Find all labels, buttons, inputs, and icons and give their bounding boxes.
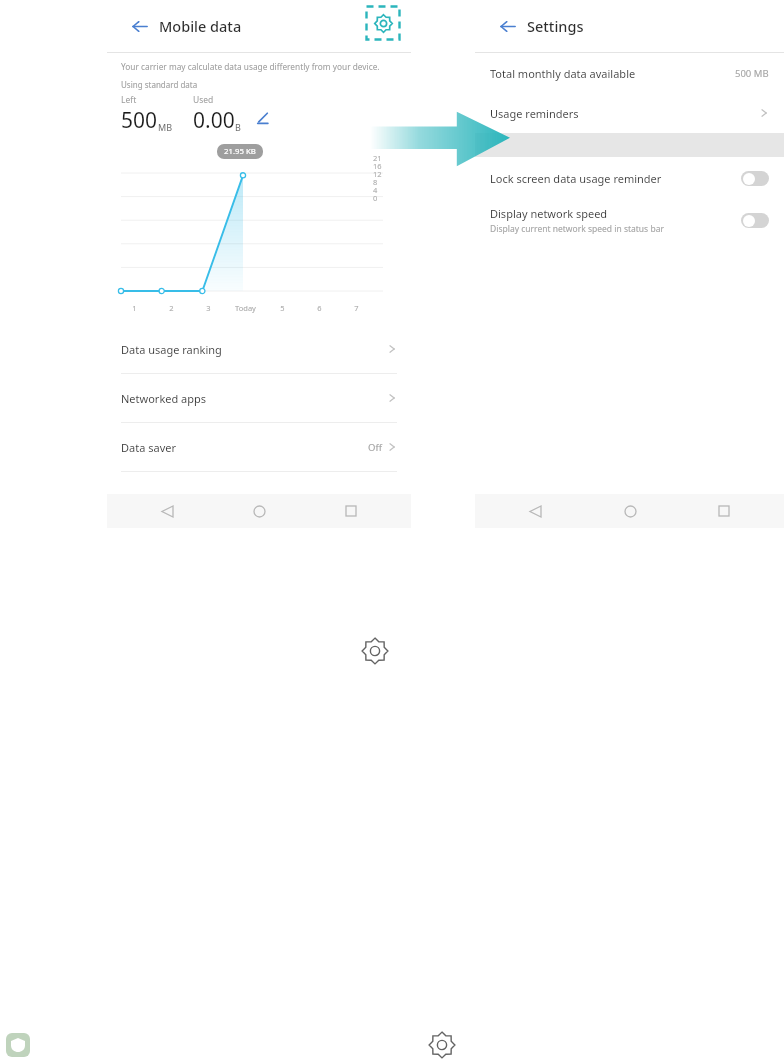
button[interactable]: Data usage ranking [107, 325, 411, 374]
staticText: Networked apps [121, 391, 207, 406]
staticText: Display network speed [490, 206, 608, 221]
staticText: 21.95 KB [224, 146, 256, 157]
button[interactable]: Recents [339, 499, 363, 523]
button[interactable]: Back [523, 499, 547, 523]
staticText: Left [121, 94, 137, 106]
staticText: 6 [301, 303, 338, 313]
staticText: MB [158, 121, 173, 133]
staticText: B [235, 121, 241, 133]
staticText: Lock screen data usage reminder [490, 171, 662, 186]
staticText: Mobile data [159, 16, 242, 36]
staticText: 4 [373, 185, 378, 195]
staticText: Today [227, 303, 264, 313]
button[interactable]: Settings [361, 637, 389, 665]
button[interactable]: Back [119, 0, 159, 52]
staticText: Data saver [121, 440, 176, 455]
staticText: 0 [373, 193, 378, 203]
staticText: Usage reminders [490, 106, 579, 121]
button[interactable]: Home [247, 499, 271, 523]
button[interactable]: Recents [712, 499, 736, 523]
button[interactable]: Settings [428, 1031, 456, 1059]
button[interactable]: Settings [365, 5, 401, 41]
button[interactable]: Security [6, 1033, 30, 1057]
staticText: 3 [190, 303, 227, 313]
button[interactable]: Total monthly data available [475, 53, 784, 93]
staticText: Off [368, 441, 382, 454]
button[interactable]: Toggle [741, 171, 769, 186]
button[interactable]: Toggle [741, 213, 769, 228]
staticText: 7 [338, 303, 375, 313]
staticText: 21 [373, 153, 382, 163]
button[interactable]: Display network speed [475, 199, 784, 241]
staticText: Used [193, 94, 214, 106]
button[interactable]: Usage reminders [475, 93, 784, 133]
staticText: 0.00 [193, 106, 235, 135]
staticText: 1 [116, 303, 153, 313]
button[interactable]: Back [487, 0, 527, 52]
button[interactable]: Home [618, 499, 642, 523]
button[interactable]: Lock screen data usage reminder [475, 157, 784, 199]
staticText: 5 [264, 303, 301, 313]
staticText: Data usage ranking [121, 342, 222, 357]
staticText: Using standard data [121, 79, 198, 90]
staticText: Your carrier may calculate data usage di… [121, 61, 380, 72]
staticText: 500 MB [735, 67, 769, 80]
staticText: 2 [153, 303, 190, 313]
button[interactable]: Edit data limit [251, 107, 273, 129]
button[interactable]: Data saver [107, 423, 411, 472]
staticText: 12 [373, 169, 382, 179]
staticText: 8 [373, 177, 378, 187]
staticText: Total monthly data available [490, 66, 636, 81]
button[interactable]: Networked apps [107, 374, 411, 423]
staticText: Display current network speed in status … [490, 223, 664, 235]
staticText: 500 [121, 106, 158, 135]
staticText: Settings [527, 16, 584, 36]
staticText: 16 [373, 161, 382, 171]
button[interactable]: Back [155, 499, 179, 523]
